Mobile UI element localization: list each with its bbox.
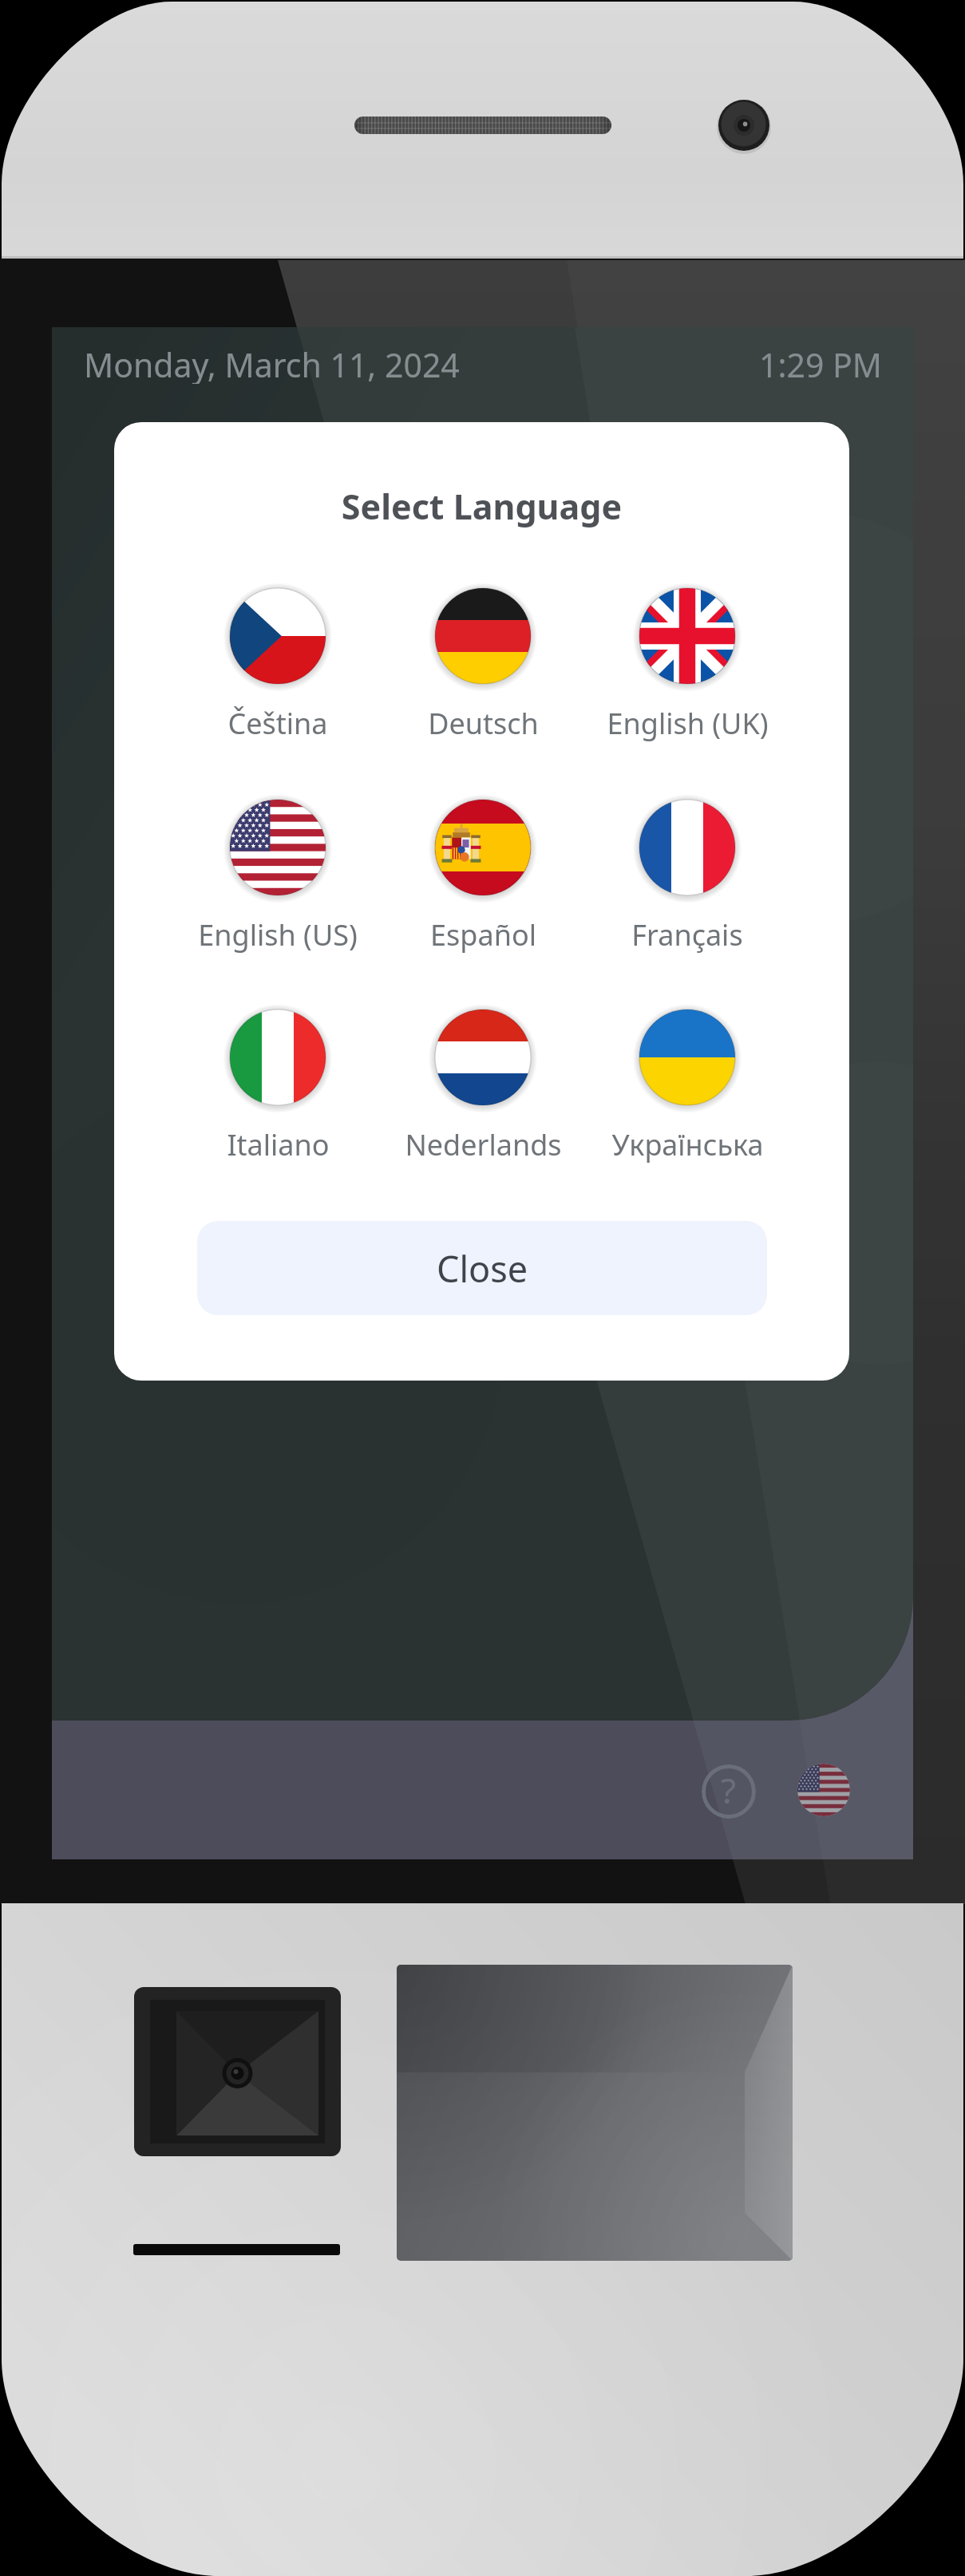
- staticText: Čeština: [227, 704, 328, 743]
- button[interactable]: Čeština: [176, 587, 380, 743]
- staticText: Select Language: [114, 483, 849, 530]
- staticText: Italiano: [227, 1125, 330, 1164]
- staticText: English (UK): [607, 704, 769, 743]
- staticText: English (US): [198, 915, 358, 954]
- button[interactable]: Help: [702, 1764, 756, 1819]
- staticText: Español: [430, 915, 536, 954]
- staticText: Українська: [611, 1125, 764, 1164]
- button[interactable]: Nederlands: [381, 1008, 585, 1164]
- button[interactable]: Français: [585, 798, 789, 954]
- button[interactable]: English (US): [176, 798, 380, 954]
- button[interactable]: Change language: [797, 1764, 850, 1816]
- staticText: Monday, March 11, 2024: [84, 342, 460, 384]
- button[interactable]: Close: [197, 1221, 767, 1315]
- button[interactable]: English (UK): [585, 587, 789, 743]
- button[interactable]: Українська: [585, 1008, 789, 1164]
- staticText: ?: [721, 1766, 737, 1814]
- button[interactable]: Italiano: [176, 1008, 380, 1164]
- staticText: Français: [631, 915, 743, 954]
- staticText: 1:29 PM: [759, 342, 882, 384]
- button[interactable]: Español: [381, 798, 585, 954]
- staticText: Close: [437, 1244, 528, 1293]
- button[interactable]: Deutsch: [381, 587, 585, 743]
- staticText: Nederlands: [405, 1125, 562, 1164]
- staticText: Deutsch: [428, 704, 539, 743]
